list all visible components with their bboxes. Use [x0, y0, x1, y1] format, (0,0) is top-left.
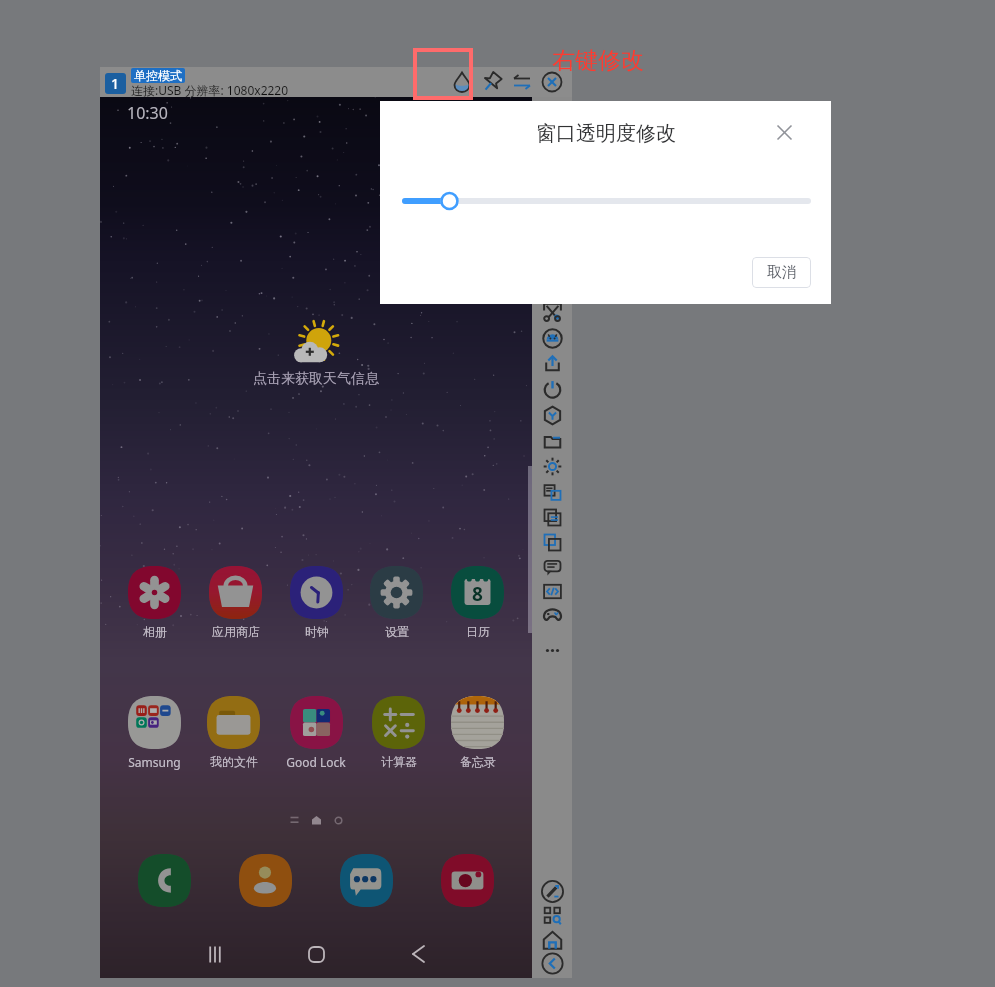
button[interactable]: Pin: [477, 67, 507, 97]
staticText: 单控模式: [134, 68, 182, 83]
button[interactable]: Edit: [539, 878, 565, 904]
staticText: 连接:USB 分辨率: 1080x2220: [131, 82, 289, 98]
staticText: 设置: [385, 624, 409, 639]
button[interactable]: [239, 854, 292, 907]
button[interactable]: More: [539, 637, 565, 663]
button[interactable]: Android: [539, 325, 565, 351]
staticText: Good Lock: [286, 754, 346, 770]
button[interactable]: Samsung: [128, 696, 181, 770]
button[interactable]: [441, 854, 494, 907]
button[interactable]: [138, 854, 191, 907]
button[interactable]: 8: [451, 566, 504, 639]
staticText: 点击来获取天气信息: [253, 370, 379, 388]
button[interactable]: Home: [293, 931, 339, 977]
button[interactable]: 设置: [370, 566, 423, 639]
staticText: 取消: [767, 263, 797, 282]
button[interactable]: 我的文件: [207, 696, 260, 769]
button[interactable]: Close: [537, 67, 567, 97]
staticText: 我的文件: [210, 754, 258, 769]
button[interactable]: 相册: [128, 566, 181, 639]
button[interactable]: Back: [539, 950, 565, 976]
staticText: 相册: [143, 624, 167, 639]
button[interactable]: Copy: [539, 504, 565, 530]
button[interactable]: Apps: [539, 902, 565, 928]
staticText: 8: [472, 581, 483, 607]
staticText: 计算器: [381, 754, 417, 769]
staticText: 备忘录: [460, 754, 496, 769]
staticText: 日历: [466, 624, 490, 639]
button[interactable]: Home: [539, 927, 565, 953]
button[interactable]: 备忘录: [451, 696, 504, 769]
button[interactable]: Clipboard: [539, 479, 565, 505]
staticText: 应用商店: [212, 624, 260, 639]
button[interactable]: Upload: [539, 350, 565, 376]
button[interactable]: Opacity: [447, 67, 477, 97]
button[interactable]: [340, 854, 393, 907]
staticText: 10:30: [127, 102, 168, 124]
button[interactable]: Game: [539, 601, 565, 627]
button[interactable]: 取消: [752, 257, 811, 288]
button[interactable]: Chat: [539, 554, 565, 580]
button[interactable]: Screenshot: [539, 299, 565, 325]
button[interactable]: Close dialog: [776, 124, 793, 141]
button[interactable]: Good Lock: [286, 696, 346, 770]
staticText: 窗口透明度修改: [536, 121, 676, 146]
button[interactable]: Duplicate: [539, 529, 565, 555]
button[interactable]: 计算器: [372, 696, 425, 769]
button[interactable]: Hexagon: [539, 402, 565, 428]
staticText: 时钟: [305, 624, 329, 639]
staticText: 右键修改: [552, 46, 644, 75]
button[interactable]: Code: [539, 578, 565, 604]
button[interactable]: 应用商店: [209, 566, 262, 639]
button[interactable]: Power: [539, 376, 565, 402]
button[interactable]: Brightness: [539, 453, 565, 479]
button[interactable]: 时钟: [290, 566, 343, 639]
staticText: Samsung: [128, 754, 181, 770]
staticText: 1: [111, 74, 120, 93]
button[interactable]: Swap: [507, 67, 537, 97]
button[interactable]: Recents: [192, 931, 238, 977]
button[interactable]: Folder: [539, 428, 565, 454]
button[interactable]: Back: [395, 931, 441, 977]
